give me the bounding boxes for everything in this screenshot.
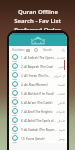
staticText: 5. Al-Ma'idah (The Food) [21,92,56,96]
staticText: 9. At-Tawbah (The Repentance) [21,128,57,132]
button[interactable]: 6 [9,98,67,107]
staticText: Makki [12,141,18,143]
staticText: Makki [12,105,18,107]
staticText: 4. An-Nisa (Women) [21,83,56,87]
staticText: 6 [14,101,16,104]
staticText: 6. Al-An'am (The Cattle) [21,101,56,105]
staticText: 2. Al-Baqarah (The Cow) [21,65,57,69]
staticText: 4 [14,83,16,86]
button[interactable]: 1 [9,53,67,62]
staticText: 2 [14,65,16,68]
staticText: 5 [14,92,16,95]
button[interactable]: 8 [9,116,67,125]
staticText: يونس [58,137,65,140]
staticText: Makki [12,69,18,71]
staticText: 3. Ali 'Imran (The Family of Imran) [21,74,52,78]
staticText: الأنفال [57,119,65,122]
staticText: الأنعام [57,101,65,104]
staticText: آل عمران [53,74,65,78]
staticText: Makki [12,114,18,116]
staticText: البقرة [58,65,65,68]
button[interactable]: 4 [9,80,67,89]
staticText: 9 [14,128,16,131]
staticText: 3 [14,74,16,77]
staticText: 1 [14,56,16,59]
staticText: Makki [12,123,18,125]
button[interactable]: Search [61,48,65,52]
staticText: Makki [12,96,18,98]
staticText: 10 [14,137,17,140]
button[interactable]: 10 [9,134,67,143]
staticText: Search - Fav List [14,17,61,25]
staticText: النساء [57,83,65,86]
button[interactable]: Revelation [11,48,31,52]
button[interactable]: 3 [9,71,67,80]
button[interactable]: Search [42,48,53,52]
button[interactable]: Sort order [33,47,38,52]
staticText: 8. Al-Anfal (The Spoils of War) [21,119,56,123]
staticText: 10. Yunus (Jonah) [21,137,57,141]
staticText: Preferred Order [14,26,61,34]
staticText: 1. Al-Fatihah (The Opening) [21,56,56,60]
staticText: Quran Offline [18,8,58,16]
staticText: Revelation [12,48,25,52]
staticText: الفاتحة [57,56,65,59]
staticText: 7 [14,110,16,113]
button[interactable]: 2 [9,62,67,71]
staticText: Makki [12,132,18,134]
button[interactable]: 7 [9,107,67,116]
staticText: Search [43,48,52,52]
staticText: Makki [12,60,18,62]
staticText: الأعراف [55,110,65,113]
button[interactable]: 5 [9,89,67,98]
staticText: 8 [14,119,16,122]
staticText: Makki [12,87,18,89]
staticText: Makki [12,78,18,80]
staticText: 7. Al-A'raf (The Heights) [21,110,54,114]
button[interactable]: 9 [9,125,67,134]
staticText: المائدة [57,92,65,95]
staticText: التوبة [58,128,65,131]
